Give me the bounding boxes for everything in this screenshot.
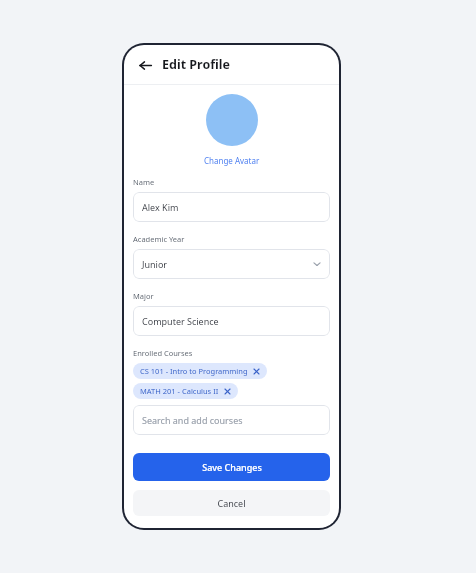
staticText: Change Avatar (204, 155, 260, 166)
staticText: Major (133, 291, 154, 301)
button[interactable]: CS 101 - Intro to Programming (133, 363, 267, 379)
staticText: Computer Science (142, 315, 219, 327)
button[interactable]: Cancel (133, 490, 330, 516)
staticText: Alex Kim (142, 201, 179, 213)
staticText: Enrolled Courses (133, 348, 193, 358)
button[interactable]: Computer Science (133, 306, 330, 336)
staticText: Save Changes (202, 461, 262, 473)
button[interactable]: Search and add courses (133, 405, 330, 435)
staticText: Cancel (217, 497, 246, 509)
button[interactable]: Alex Kim (133, 192, 330, 222)
staticText: Edit Profile (162, 56, 230, 73)
staticText: Academic Year (133, 234, 185, 244)
staticText: CS 101 - Intro to Programming (140, 366, 248, 376)
button[interactable]: Profile avatar (206, 94, 258, 146)
staticText: Junior (142, 258, 168, 270)
other: Remove CS 101 - Intro to Programming (253, 368, 260, 375)
button[interactable]: Junior (133, 249, 330, 279)
other: Remove MATH 201 - Calculus II (224, 388, 231, 395)
staticText: MATH 201 - Calculus II (140, 386, 219, 396)
button[interactable]: Back (135, 55, 155, 75)
staticText: Search and add courses (142, 414, 243, 426)
staticText: Name (133, 177, 155, 187)
button[interactable]: Change Avatar (204, 155, 260, 166)
button[interactable]: MATH 201 - Calculus II (133, 383, 238, 399)
button[interactable]: Save Changes (133, 453, 330, 481)
